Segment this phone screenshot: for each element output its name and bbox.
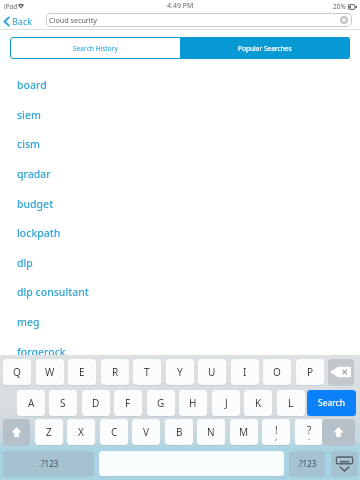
button[interactable]: Space	[99, 451, 284, 476]
button[interactable]: .?123	[289, 451, 325, 476]
button[interactable]: Cloud security	[46, 13, 352, 27]
staticText: dlp consultant	[17, 285, 89, 299]
button[interactable]: Shift	[322, 419, 355, 445]
button[interactable]: meg	[0, 307, 360, 337]
button[interactable]: Backspace	[328, 359, 354, 385]
button[interactable]: E	[68, 359, 96, 385]
staticText: U	[208, 365, 216, 379]
other: Clear text	[340, 16, 348, 24]
button[interactable]: Search	[307, 390, 356, 416]
button[interactable]: budget	[0, 189, 360, 219]
button[interactable]: G	[147, 390, 175, 416]
staticText: J	[225, 396, 228, 410]
button[interactable]: H	[179, 390, 207, 416]
staticText: .?123	[297, 458, 317, 469]
staticText: X	[78, 425, 84, 439]
button[interactable]: S	[49, 390, 77, 416]
staticText: budget	[17, 197, 54, 211]
staticText: T	[144, 365, 150, 379]
button[interactable]: D	[82, 390, 110, 416]
staticText: !	[275, 423, 278, 437]
button[interactable]: qradar	[0, 159, 360, 189]
button[interactable]: Q	[3, 359, 31, 385]
button[interactable]: P	[296, 359, 324, 385]
staticText: dlp	[17, 256, 33, 270]
staticText: G	[157, 396, 165, 410]
button[interactable]: Shift	[3, 419, 30, 445]
button[interactable]: J	[212, 390, 240, 416]
staticText: O	[273, 365, 281, 379]
staticText: M	[239, 425, 249, 439]
staticText: K	[255, 396, 262, 410]
button[interactable]: Search History	[10, 37, 180, 59]
button[interactable]: T	[133, 359, 161, 385]
button[interactable]: Z	[35, 419, 63, 445]
staticText: D	[92, 396, 100, 410]
button[interactable]: N	[197, 419, 225, 445]
button[interactable]: dlp consultant	[0, 277, 360, 307]
button[interactable]: dlp	[0, 248, 360, 278]
button[interactable]: U	[198, 359, 226, 385]
button[interactable]: L	[277, 390, 305, 416]
staticText: siem	[17, 108, 41, 122]
button[interactable]: cism	[0, 129, 360, 159]
button[interactable]: K	[244, 390, 272, 416]
button[interactable]: !	[262, 419, 290, 445]
button[interactable]: Y	[166, 359, 194, 385]
staticText: A	[28, 396, 35, 410]
staticText: forgerock	[17, 345, 66, 359]
staticText: .	[308, 431, 311, 442]
staticText: Popular Searches	[238, 44, 292, 53]
staticText: I	[243, 365, 247, 379]
staticText: Back	[12, 15, 33, 27]
staticText: Search History	[73, 44, 118, 53]
staticText: Search	[318, 397, 345, 409]
staticText: F	[125, 396, 131, 410]
staticText: C	[111, 425, 118, 439]
button[interactable]: .?123	[3, 451, 94, 476]
staticText: V	[143, 425, 149, 439]
staticText: B	[176, 425, 183, 439]
staticText: qradar	[17, 167, 51, 181]
button[interactable]: X	[67, 419, 95, 445]
button[interactable]: A	[17, 390, 45, 416]
button[interactable]: B	[165, 419, 193, 445]
staticText: iPad	[4, 2, 18, 11]
staticText: cism	[17, 137, 41, 151]
button[interactable]: W	[36, 359, 64, 385]
staticText: R	[112, 365, 119, 379]
staticText: L	[288, 396, 294, 410]
button[interactable]: F	[114, 390, 142, 416]
button[interactable]: I	[231, 359, 259, 385]
staticText: H	[189, 396, 197, 410]
staticText: Cloud security	[49, 15, 97, 25]
staticText: W	[45, 365, 55, 379]
button[interactable]: R	[101, 359, 129, 385]
button[interactable]: Hide keyboard	[331, 451, 358, 476]
button[interactable]: ?	[295, 419, 323, 445]
staticText: 20%	[333, 2, 346, 11]
staticText: board	[17, 78, 47, 92]
button[interactable]: Back	[0, 15, 39, 27]
staticText: 4:49 PM	[167, 1, 194, 11]
staticText: P	[307, 365, 314, 379]
button[interactable]: board	[0, 70, 360, 100]
staticText: E	[79, 365, 85, 379]
staticText: Q	[13, 365, 21, 379]
button[interactable]: V	[132, 419, 160, 445]
button[interactable]: C	[100, 419, 128, 445]
button[interactable]: lockpath	[0, 218, 360, 248]
staticText: Z	[46, 425, 52, 439]
button[interactable]: Popular Searches	[180, 37, 350, 59]
staticText: ,	[275, 431, 278, 442]
button[interactable]: siem	[0, 100, 360, 130]
button[interactable]: M	[230, 419, 258, 445]
staticText: .?123	[39, 458, 59, 469]
staticText: lockpath	[17, 226, 61, 240]
staticText: S	[60, 396, 66, 410]
staticText: N	[207, 425, 215, 439]
button[interactable]: O	[263, 359, 291, 385]
staticText: meg	[17, 315, 40, 329]
staticText: ?	[307, 423, 312, 437]
button[interactable]: forgerock	[0, 337, 360, 367]
